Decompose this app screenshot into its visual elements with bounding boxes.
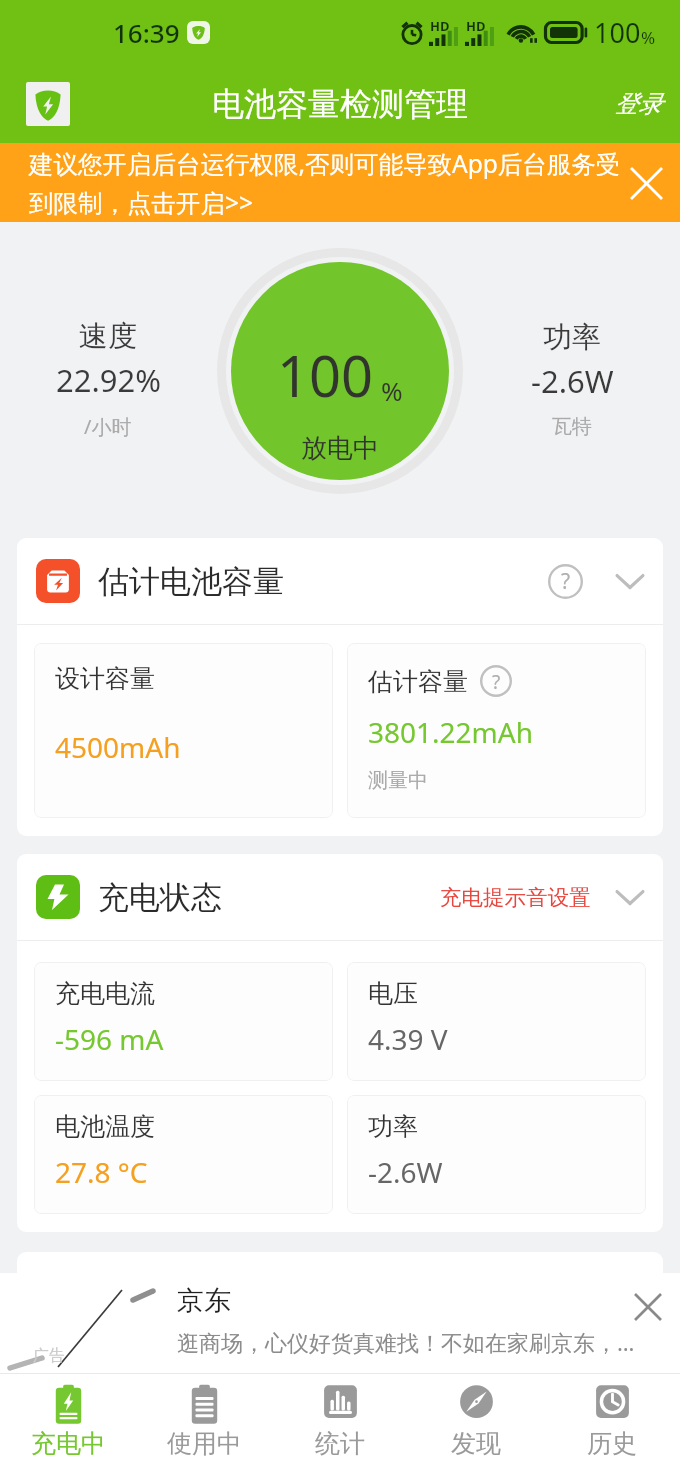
staticText: 电压 xyxy=(368,978,418,1009)
button[interactable]: 电池温度 xyxy=(34,1095,333,1214)
staticText: 统计 xyxy=(315,1428,365,1459)
staticText: 充电状态 xyxy=(98,878,222,917)
staticText: 使用中 xyxy=(167,1428,242,1459)
button[interactable]: 广告 xyxy=(0,1273,680,1373)
staticText: 历史 xyxy=(587,1428,637,1459)
staticText: -596 mA xyxy=(55,1020,164,1058)
staticText: 功率 xyxy=(368,1111,418,1142)
staticText: HD xyxy=(430,17,450,35)
staticText: 到限制，点击开启>> xyxy=(29,186,254,219)
button[interactable]: 关闭广告 xyxy=(628,1287,668,1327)
staticText: 充电电流 xyxy=(55,978,155,1009)
button[interactable]: 估计电池容量 xyxy=(17,538,663,624)
staticText: 4500mAh xyxy=(55,728,181,766)
staticText: % xyxy=(381,373,403,408)
button[interactable]: 历史 xyxy=(544,1374,680,1469)
staticText: 电池温度 xyxy=(55,1111,155,1142)
button[interactable]: 应用图标 xyxy=(26,82,70,126)
staticText: 27.8 °C xyxy=(55,1153,148,1191)
staticText: ? xyxy=(492,668,501,694)
button[interactable]: 功率 xyxy=(347,1095,646,1214)
staticText: 放电中 xyxy=(301,432,379,465)
button[interactable]: 电压 xyxy=(347,962,646,1081)
staticText: -2.6W xyxy=(531,360,614,402)
staticText: 发现 xyxy=(451,1428,501,1459)
staticText: /小时 xyxy=(84,413,132,440)
button[interactable]: 建议您开启后台运行权限,否则可能导致App后台服务受 xyxy=(0,143,680,222)
button[interactable]: 使用中 xyxy=(136,1374,272,1469)
staticText: 逛商场，心仪好货真难找！不如在家刷京东，… xyxy=(177,1327,635,1357)
staticText: 充电中 xyxy=(31,1428,106,1459)
staticText: 22.92% xyxy=(56,359,161,401)
button[interactable]: 充电状态 xyxy=(17,854,663,940)
staticText: 电池容量检测管理 xyxy=(212,84,468,124)
staticText: 100 xyxy=(277,337,374,413)
staticText: 广告 xyxy=(33,1346,65,1366)
staticText: 3801.22mAh xyxy=(368,713,533,751)
button[interactable]: 帮助 xyxy=(548,564,583,599)
button[interactable]: 电量 100% xyxy=(217,248,463,494)
button[interactable]: 充电电流 xyxy=(34,962,333,1081)
staticText: 登录 xyxy=(614,89,662,119)
staticText: 设计容量 xyxy=(55,663,155,694)
button[interactable]: 关闭提示 xyxy=(623,160,669,206)
staticText: ? xyxy=(561,567,571,596)
staticText: 瓦特 xyxy=(552,414,592,439)
button[interactable]: 充电提示音设置 xyxy=(438,878,593,917)
button[interactable]: 发现 xyxy=(408,1374,544,1469)
staticText: % xyxy=(641,26,656,49)
button[interactable]: 展开 xyxy=(613,880,647,914)
staticText: 测量中 xyxy=(368,768,428,793)
staticText: 功率 xyxy=(543,319,601,356)
button[interactable]: 估计容量 xyxy=(347,643,646,818)
staticText: 建议您开启后台运行权限,否则可能导致App后台服务受 xyxy=(29,147,621,180)
button[interactable]: 统计 xyxy=(272,1374,408,1469)
staticText: 16:39 xyxy=(113,15,180,50)
staticText: 100 xyxy=(594,14,641,51)
staticText: -2.6W xyxy=(368,1153,443,1191)
staticText: 估计容量 xyxy=(368,666,468,697)
button[interactable]: 充电中 xyxy=(0,1374,136,1469)
staticText: 京东 xyxy=(177,1284,231,1318)
staticText: 速度 xyxy=(79,318,137,355)
button[interactable]: 展开 xyxy=(613,564,647,598)
button[interactable]: 登录 xyxy=(606,81,670,127)
staticText: HD xyxy=(466,17,486,35)
staticText: 4.39 V xyxy=(368,1020,448,1058)
staticText: 估计电池容量 xyxy=(98,562,284,601)
staticText: 充电提示音设置 xyxy=(440,884,591,911)
button[interactable]: 设计容量 xyxy=(34,643,333,818)
